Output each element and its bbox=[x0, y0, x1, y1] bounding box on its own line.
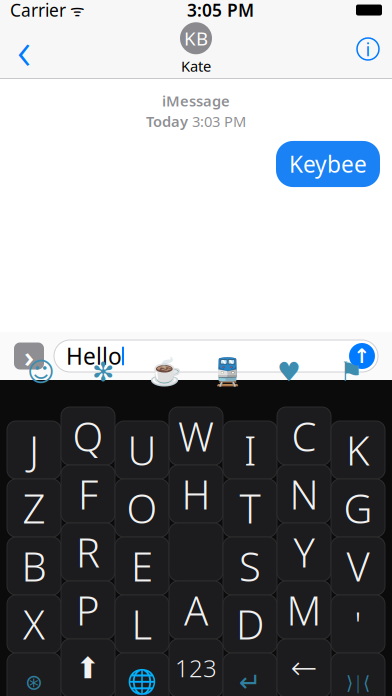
staticText: Y bbox=[293, 525, 314, 578]
staticText: M bbox=[286, 583, 321, 636]
staticText: 🌐 bbox=[127, 668, 157, 696]
staticText: ← bbox=[290, 650, 317, 686]
staticText: 123 bbox=[175, 652, 217, 684]
button[interactable]: H bbox=[167, 462, 225, 526]
staticText: U bbox=[127, 423, 156, 476]
staticText: 3:05 PM bbox=[187, 0, 254, 21]
button[interactable]: N bbox=[275, 462, 333, 526]
staticText: O bbox=[126, 481, 157, 534]
staticText: I bbox=[244, 423, 256, 476]
staticText: W bbox=[178, 409, 214, 462]
button[interactable]: ⊛ bbox=[5, 650, 63, 696]
staticText: L bbox=[131, 597, 152, 650]
staticText: E bbox=[131, 539, 153, 592]
staticText: ☺ bbox=[27, 357, 55, 387]
staticText: ✻ bbox=[92, 357, 114, 387]
button[interactable]: Symbols bbox=[82, 357, 124, 387]
staticText: T bbox=[239, 481, 260, 534]
button[interactable]: Food bbox=[144, 357, 186, 387]
staticText: iMessage bbox=[162, 91, 230, 110]
button[interactable]: ← bbox=[275, 636, 333, 696]
button[interactable]: E bbox=[113, 534, 171, 598]
staticText: Carrier bbox=[10, 0, 66, 21]
staticText: H bbox=[181, 467, 210, 520]
button[interactable]: Y bbox=[275, 520, 333, 584]
button[interactable]: Hearts bbox=[268, 357, 310, 387]
button[interactable]: Q bbox=[59, 404, 117, 468]
button[interactable]: Emoji bbox=[20, 357, 62, 387]
button[interactable]: Travel bbox=[206, 357, 248, 387]
staticText: ↵ bbox=[239, 667, 261, 696]
staticText: D bbox=[236, 597, 264, 650]
staticText: ⟩|⟨ bbox=[346, 670, 370, 694]
staticText: › bbox=[24, 336, 34, 375]
staticText: J bbox=[29, 423, 39, 476]
button[interactable]: Details bbox=[344, 23, 392, 75]
staticText: ↑ bbox=[353, 345, 370, 367]
staticText: Keybee bbox=[289, 149, 367, 179]
button[interactable]: I bbox=[221, 418, 279, 482]
staticText: KB bbox=[184, 26, 208, 51]
button[interactable]: A bbox=[167, 578, 225, 642]
staticText: ♥ bbox=[277, 357, 301, 387]
button[interactable]: D bbox=[221, 592, 279, 656]
button[interactable]: O bbox=[113, 476, 171, 540]
staticText: N bbox=[289, 467, 318, 520]
button[interactable]: V bbox=[329, 534, 387, 598]
button[interactable]: Z bbox=[5, 476, 63, 540]
staticText: Z bbox=[22, 481, 45, 534]
button[interactable]: S bbox=[221, 534, 279, 598]
staticText: 🚆 bbox=[210, 357, 243, 387]
button[interactable]: T bbox=[221, 476, 279, 540]
staticText: Hello bbox=[66, 341, 122, 371]
staticText: 3:03 PM bbox=[192, 111, 246, 131]
staticText: Q bbox=[72, 409, 103, 462]
staticText: ⬆ bbox=[75, 651, 100, 685]
staticText: Kate bbox=[181, 56, 211, 76]
staticText: ☕ bbox=[148, 357, 181, 387]
staticText: ‹ bbox=[17, 14, 31, 84]
button[interactable]: X bbox=[5, 592, 63, 656]
staticText: B bbox=[21, 539, 46, 592]
button[interactable]: Back bbox=[0, 23, 48, 75]
button[interactable]: B bbox=[5, 534, 63, 598]
button[interactable]: M bbox=[275, 578, 333, 642]
button[interactable]: U bbox=[113, 418, 171, 482]
button[interactable]: ⟩|⟨ bbox=[329, 650, 387, 696]
staticText: i bbox=[365, 37, 370, 61]
staticText: V bbox=[346, 539, 369, 592]
staticText: C bbox=[291, 409, 316, 462]
button[interactable]: Expand apps bbox=[14, 342, 44, 369]
button[interactable]: ' bbox=[329, 592, 387, 656]
staticText: A bbox=[184, 583, 208, 636]
button[interactable]: C bbox=[275, 404, 333, 468]
staticText: Today bbox=[146, 111, 188, 131]
staticText: ⊛ bbox=[25, 670, 43, 694]
staticText: G bbox=[343, 481, 372, 534]
button[interactable]: J bbox=[5, 418, 63, 482]
staticText: ' bbox=[354, 601, 361, 647]
staticText: S bbox=[239, 539, 261, 592]
button[interactable]: 🌐 bbox=[113, 650, 171, 696]
button[interactable]: 123 bbox=[167, 636, 225, 696]
staticText: F bbox=[78, 467, 98, 520]
staticText: X bbox=[23, 597, 45, 650]
button[interactable]: R bbox=[59, 520, 117, 584]
button[interactable]: W bbox=[167, 404, 225, 468]
staticText: K bbox=[346, 423, 370, 476]
button[interactable]: Flags bbox=[330, 357, 372, 387]
button[interactable]: K bbox=[329, 418, 387, 482]
button[interactable]: Hello bbox=[54, 340, 378, 372]
staticText: P bbox=[76, 583, 100, 636]
button[interactable]: G bbox=[329, 476, 387, 540]
button[interactable]: ⬆ bbox=[59, 636, 117, 696]
button[interactable]: L bbox=[113, 592, 171, 656]
button[interactable]: F bbox=[59, 462, 117, 526]
staticText: ⚑ bbox=[339, 357, 363, 387]
button[interactable]: ↵ bbox=[221, 650, 279, 696]
button[interactable]: P bbox=[59, 578, 117, 642]
staticText: ᯤ bbox=[66, 0, 85, 21]
staticText: R bbox=[76, 525, 100, 578]
